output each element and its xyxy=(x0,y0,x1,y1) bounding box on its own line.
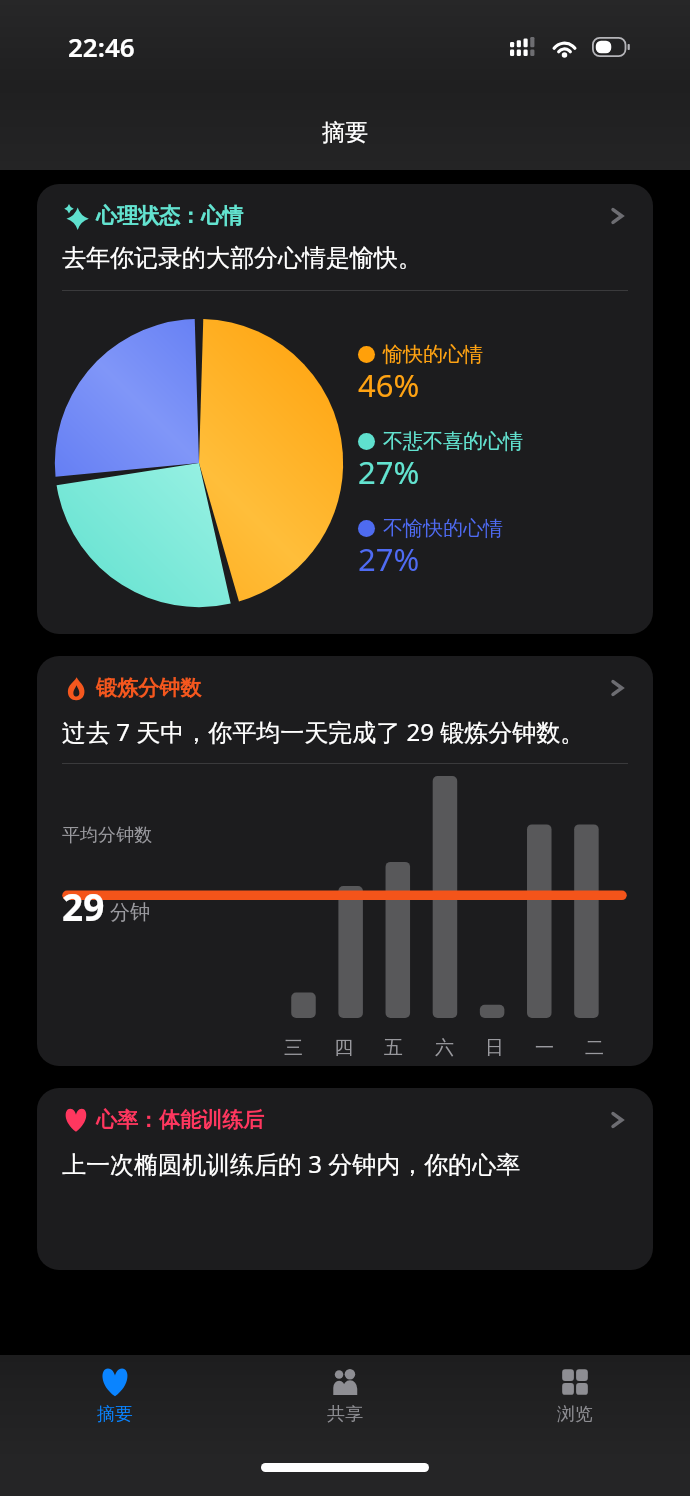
staticText: 平均分钟数 xyxy=(62,824,152,847)
staticText: 一 xyxy=(535,1036,554,1060)
staticText: 日 xyxy=(485,1036,504,1060)
staticText: 22:46 xyxy=(68,29,135,64)
staticText: 上一次椭圆机训练后的 3 分钟内，你的心率 xyxy=(62,1147,521,1180)
staticText: 二 xyxy=(585,1036,604,1060)
staticText: 分钟 xyxy=(110,900,150,925)
button[interactable]: 浏览 xyxy=(460,1361,690,1430)
button[interactable]: 摘要 xyxy=(0,1361,230,1430)
staticText: 不愉快的心情 xyxy=(383,516,503,541)
staticText: 不悲不喜的心情 xyxy=(383,429,523,454)
staticText: 浏览 xyxy=(557,1403,593,1426)
staticText: 心理状态：心情 xyxy=(96,203,243,229)
staticText: 愉快的心情 xyxy=(383,342,483,367)
staticText: 27% xyxy=(358,538,420,580)
staticText: 五 xyxy=(384,1036,403,1060)
staticText: 三 xyxy=(284,1036,303,1060)
staticText: 六 xyxy=(435,1036,454,1060)
staticText: 27% xyxy=(358,451,420,493)
other: Open details xyxy=(606,674,628,702)
staticText: 摘要 xyxy=(322,118,368,147)
other: Open details xyxy=(606,1106,628,1134)
staticText: 共享 xyxy=(327,1403,363,1426)
other: Open details xyxy=(606,202,628,230)
staticText: 摘要 xyxy=(97,1403,133,1426)
button[interactable]: 锻炼分钟数 xyxy=(37,656,653,1066)
staticText: 去年你记录的大部分心情是愉快。 xyxy=(62,243,422,273)
staticText: 46% xyxy=(358,364,420,406)
button[interactable]: 心理状态：心情 xyxy=(37,184,653,634)
button[interactable]: 共享 xyxy=(230,1361,460,1430)
button[interactable]: 心率：体能训练后 xyxy=(37,1088,653,1270)
staticText: 心率：体能训练后 xyxy=(96,1107,264,1133)
staticText: 四 xyxy=(334,1036,353,1060)
staticText: 锻炼分钟数 xyxy=(96,675,201,701)
staticText: 过去 7 天中，你平均一天完成了 29 锻炼分钟数。 xyxy=(62,715,585,748)
staticText: 29 xyxy=(62,881,105,931)
